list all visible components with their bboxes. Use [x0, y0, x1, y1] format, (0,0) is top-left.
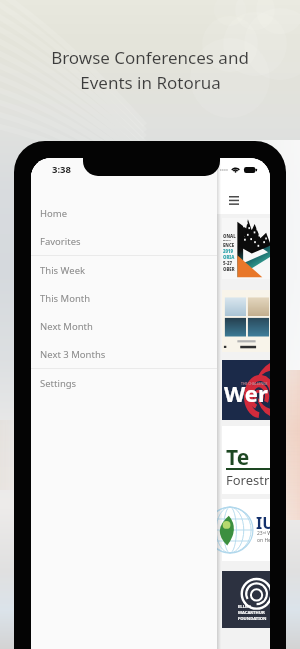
staticText: MACARTHUR	[238, 610, 265, 616]
staticText: on Health	[257, 537, 270, 544]
staticText: 23ʳᵈ World Congress	[257, 530, 270, 537]
button[interactable]: Next 3 Months	[31, 340, 217, 368]
staticText: ENCE	[223, 242, 235, 248]
button[interactable]: IUFRO	[222, 499, 270, 561]
staticText: ELLEN	[238, 604, 251, 610]
staticText: Wero	[224, 378, 270, 408]
button[interactable]	[222, 290, 270, 352]
button[interactable]: This Week	[31, 256, 217, 284]
staticText: 5-27	[223, 260, 232, 266]
staticText: THE CHALLENGE	[241, 381, 268, 386]
button[interactable]: Favorites	[31, 227, 217, 255]
staticText: ERENCE	[223, 239, 231, 242]
staticText: ORIA	[223, 254, 235, 260]
button[interactable]: ONAL	[222, 218, 270, 279]
staticText: 2019	[223, 248, 234, 254]
staticText: Next 3 Months	[40, 348, 106, 361]
staticText: Forestry New Zealand	[226, 471, 270, 489]
button[interactable]: Settings	[31, 369, 217, 397]
staticText: Te Uru Rakau	[226, 443, 270, 472]
button[interactable]: Wero	[222, 360, 270, 420]
staticText: Settings	[40, 377, 77, 390]
button[interactable]: Open navigation drawer	[221, 189, 247, 211]
staticText: FOUNDATION	[238, 616, 267, 622]
button[interactable]: Home	[31, 199, 217, 227]
button[interactable]: This Month	[31, 284, 217, 312]
staticText: Events in Rotorua	[80, 71, 221, 94]
staticText: ONAL	[223, 233, 236, 239]
staticText: Home	[40, 207, 68, 220]
staticText: Next Month	[40, 320, 93, 333]
staticText: IUFRO	[256, 512, 270, 534]
button[interactable]: Te Uru Rakau	[222, 426, 270, 494]
staticText: OBER	[223, 266, 235, 272]
staticText: This Month	[40, 292, 91, 305]
staticText: 3:38	[52, 163, 71, 176]
button[interactable]: ELLEN	[222, 571, 270, 628]
staticText: This Week	[40, 264, 86, 277]
staticText: Favorites	[40, 235, 81, 248]
button[interactable]: Next Month	[31, 312, 217, 340]
staticText: Browse Conferences and	[51, 46, 249, 69]
